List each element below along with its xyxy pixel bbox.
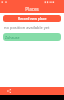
- staticText: Record new place: [18, 16, 47, 21]
- button[interactable]: Zuhause: [3, 33, 61, 41]
- staticText: Zuhause: [5, 35, 20, 40]
- button[interactable]: Record new place: [3, 15, 61, 22]
- staticText: no position available yet: [4, 25, 50, 30]
- staticText: Places: [25, 6, 39, 12]
- button[interactable]: Share: [0, 87, 17, 95]
